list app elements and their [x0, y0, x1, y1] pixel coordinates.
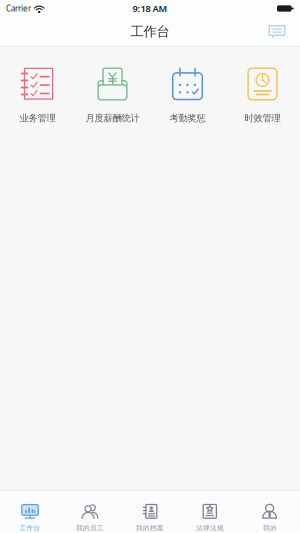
button[interactable]: 我的档案	[120, 491, 180, 533]
button[interactable]: Messages	[262, 19, 292, 43]
staticText: Carrier	[6, 3, 31, 14]
button[interactable]: 业务管理	[0, 67, 75, 124]
staticText: 9:18 AM	[132, 2, 167, 15]
staticText: 我的员工	[76, 524, 104, 532]
staticText: 我的	[263, 524, 277, 532]
staticText: 法律法规	[196, 524, 224, 532]
button[interactable]: 我的员工	[60, 491, 120, 533]
staticText: 工作台	[130, 23, 169, 40]
button[interactable]: 法律法规	[180, 491, 240, 533]
staticText: 月度薪酬统计	[85, 112, 139, 124]
staticText: 考勤奖惩	[169, 112, 205, 124]
button[interactable]: 工作台	[0, 491, 60, 533]
button[interactable]: 时效管理	[225, 67, 300, 124]
staticText: 时效管理	[244, 112, 280, 124]
button[interactable]: 考勤奖惩	[150, 67, 225, 124]
button[interactable]: 我的	[240, 491, 300, 533]
button[interactable]: 月度薪酬统计	[75, 67, 150, 124]
staticText: 业务管理	[19, 112, 55, 124]
staticText: 我的档案	[136, 524, 164, 532]
staticText: 工作台	[19, 524, 40, 532]
